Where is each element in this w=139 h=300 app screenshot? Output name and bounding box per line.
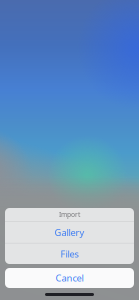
button[interactable]: Gallery: [5, 222, 134, 243]
button[interactable]: Files: [5, 243, 134, 264]
staticText: Import: [59, 210, 80, 219]
staticText: Delete: [56, 264, 83, 276]
staticText: Cancel: [55, 272, 83, 284]
button[interactable]: Cancel: [5, 268, 134, 288]
button[interactable]: Delete: [5, 265, 134, 275]
staticText: Files: [60, 248, 78, 260]
staticText: Gallery: [54, 226, 84, 239]
